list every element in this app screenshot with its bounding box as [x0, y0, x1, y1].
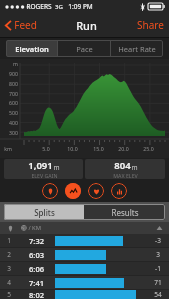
staticText: 3 [7, 264, 11, 273]
staticText: 20.0 [118, 145, 129, 152]
button[interactable]: 5 [0, 290, 169, 299]
staticText: ⓴ / KM [21, 224, 41, 232]
button[interactable]: Splits [4, 204, 84, 220]
staticText: m [13, 60, 18, 67]
button[interactable]: Elevation [6, 40, 57, 57]
button[interactable]: Feed [5, 13, 164, 37]
button[interactable]: Results [84, 204, 165, 220]
staticText: 300 [9, 129, 18, 136]
button[interactable]: Elevation chart [65, 183, 81, 199]
staticText: Share [137, 18, 164, 32]
button[interactable]: Heart Rate [111, 40, 163, 57]
staticText: ELEV GAIN [31, 172, 58, 179]
other: Bluetooth [140, 3, 145, 11]
staticText: 400 [9, 119, 18, 126]
staticText: Elevation [15, 44, 49, 54]
staticText: 54 [154, 290, 162, 299]
staticText: 700 [9, 90, 18, 97]
staticText: -1 [155, 264, 161, 273]
staticText: Pace [76, 44, 93, 54]
staticText: km [4, 145, 12, 152]
staticText: 3 [156, 250, 160, 259]
staticText: 5.0 [42, 145, 50, 152]
other: Battery [148, 3, 165, 10]
staticText: 6:06 [29, 264, 44, 274]
staticText: 6:03 [29, 250, 44, 260]
staticText: 15.0 [93, 145, 104, 152]
button[interactable]: 804 [85, 159, 165, 179]
other: Distance [8, 225, 13, 232]
staticText: Run [76, 18, 97, 33]
staticText: 25.0 [143, 145, 154, 152]
staticText: 5 [7, 290, 11, 299]
staticText: m [131, 163, 138, 172]
staticText: 3G [55, 3, 63, 11]
staticText: 71 [154, 278, 162, 287]
staticText: 500 [9, 109, 18, 116]
button[interactable]: Heart rate [88, 183, 104, 199]
staticText: 7:32 [29, 236, 44, 246]
staticText: 1 [7, 236, 11, 245]
button[interactable]: 3 [0, 262, 169, 275]
staticText: Feed [14, 18, 37, 32]
button[interactable]: 4 [0, 276, 169, 289]
staticText: Heart Rate [118, 44, 156, 54]
staticText: Results [111, 207, 139, 218]
staticText: 8:02 [29, 290, 44, 299]
button[interactable]: Splits bar chart [111, 183, 127, 199]
staticText: -3 [155, 236, 161, 245]
staticText: 7:41 [29, 278, 44, 288]
staticText: 800 [9, 80, 18, 87]
button[interactable]: Feed [5, 18, 37, 32]
staticText: 1,091 [28, 159, 53, 172]
staticText: 600 [9, 99, 18, 106]
button[interactable]: Map pin [42, 183, 58, 199]
staticText: m [53, 163, 60, 172]
button[interactable]: Share [137, 18, 164, 32]
button[interactable]: 1 [0, 234, 169, 247]
staticText: 804 [114, 159, 131, 172]
staticText: 10.0 [67, 145, 78, 152]
staticText: ROGERS [26, 2, 52, 11]
staticText: 4 [7, 278, 11, 287]
button[interactable]: Pace [58, 40, 110, 57]
staticText: MAX ELEV [113, 172, 138, 179]
button[interactable]: 1,091 [4, 159, 83, 179]
staticText: Splits [34, 207, 55, 218]
staticText: 1:09 PM [68, 2, 93, 11]
other: Elevation change [156, 225, 163, 231]
staticText: 2 [7, 250, 11, 259]
button[interactable]: 2 [0, 248, 169, 261]
staticText: 900 [9, 70, 18, 77]
